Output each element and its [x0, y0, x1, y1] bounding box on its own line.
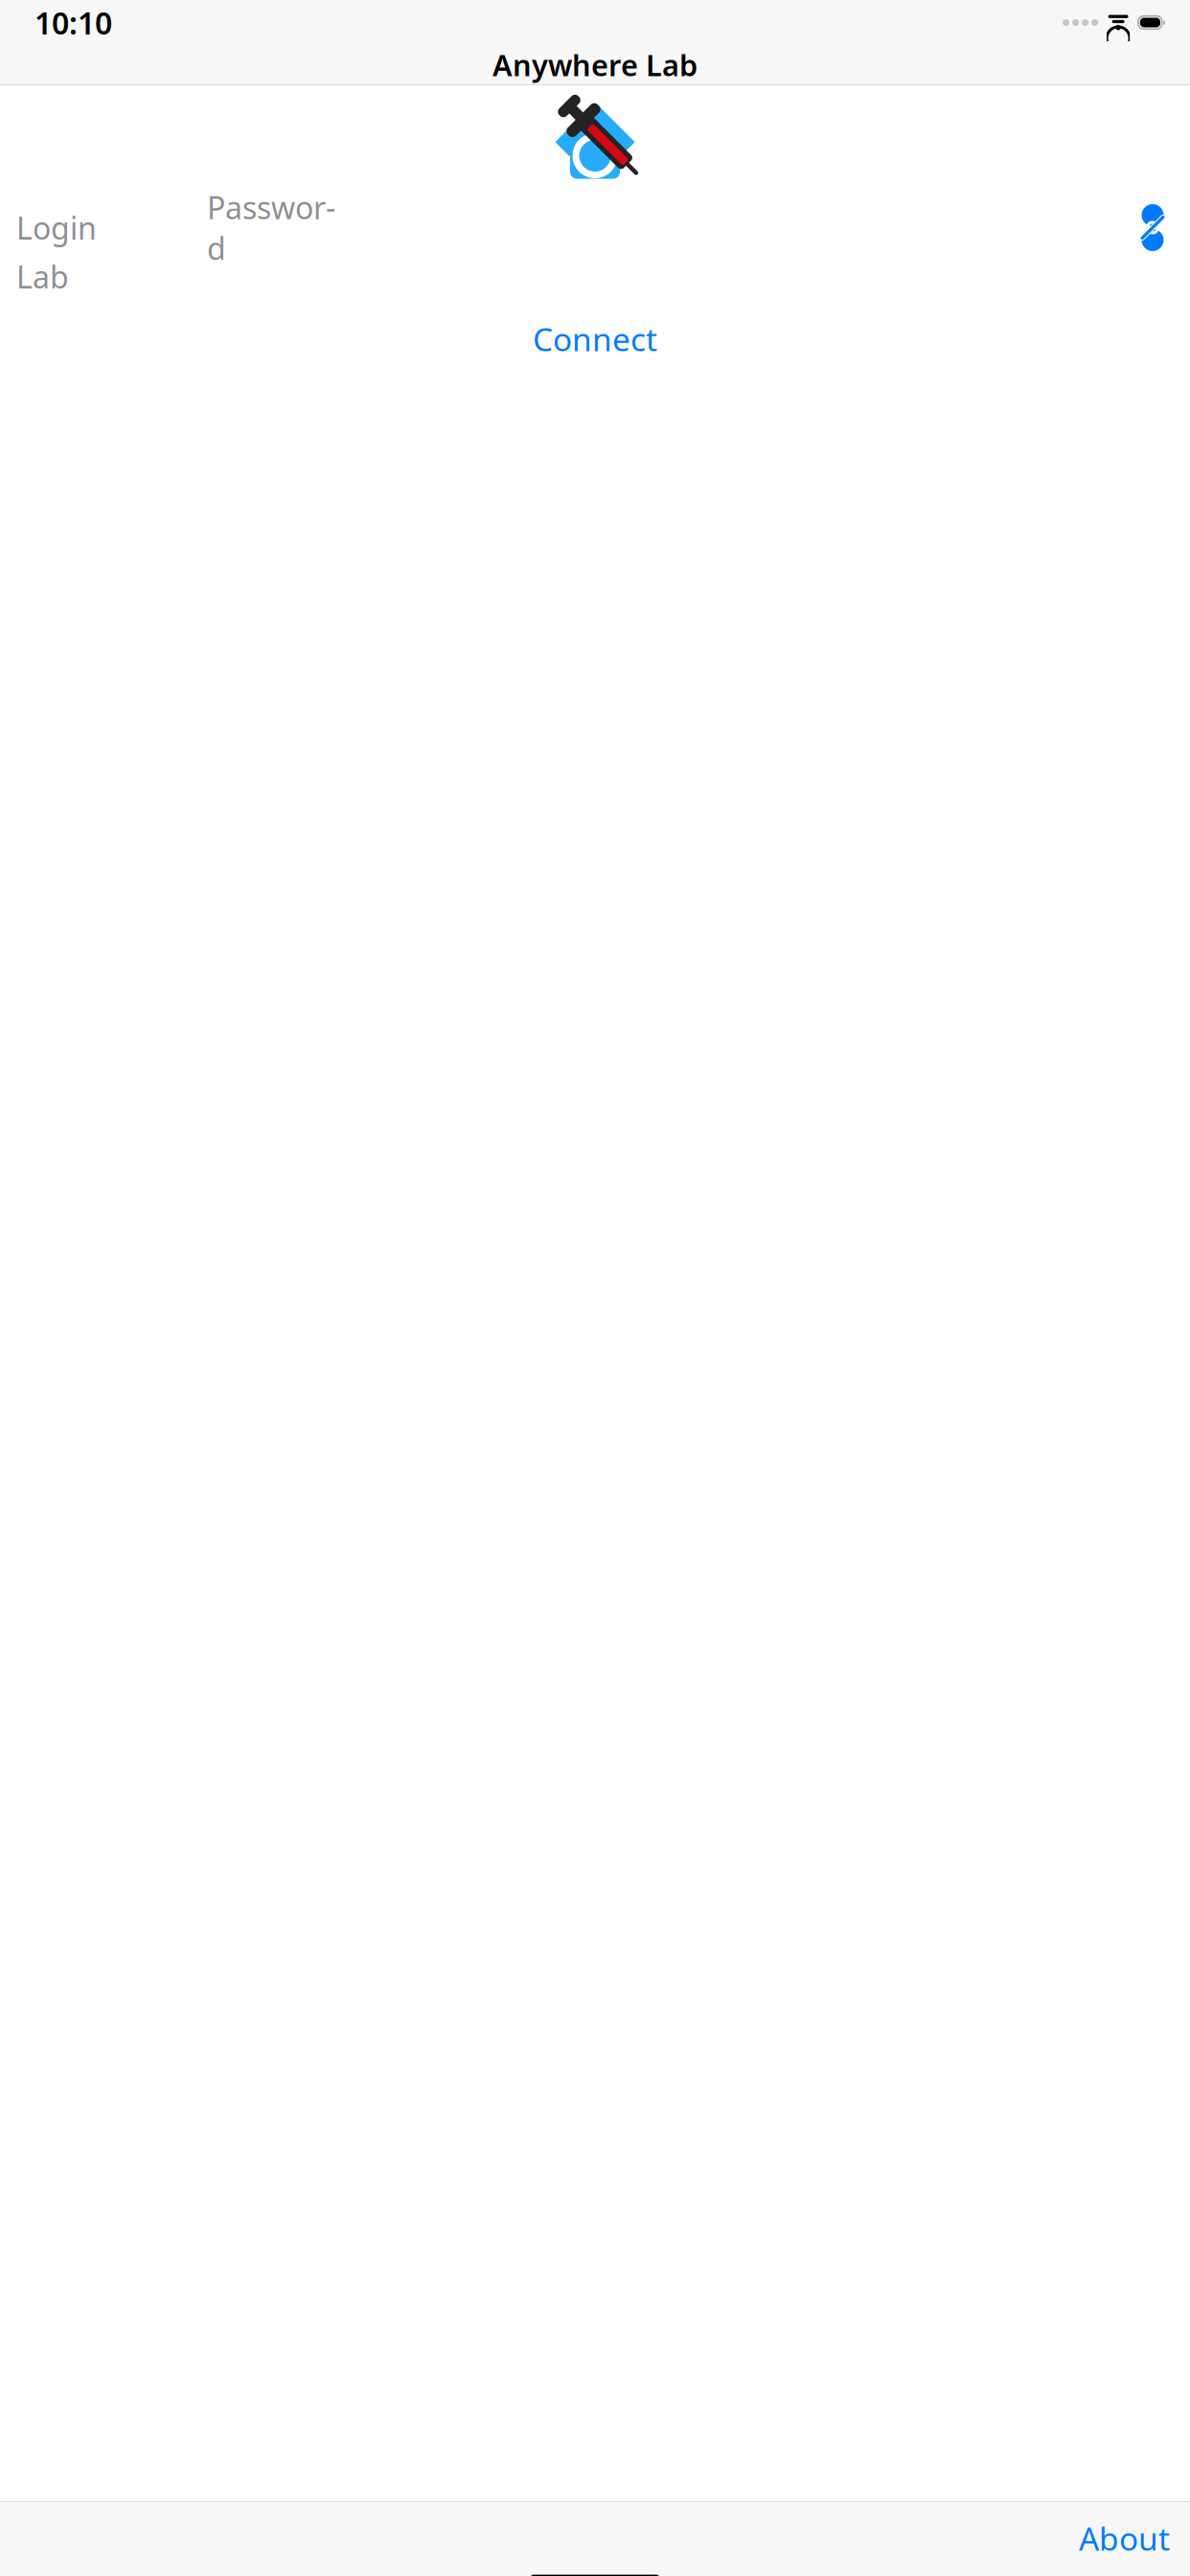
- button[interactable]: Show password: [1132, 207, 1174, 249]
- staticText: Anywhere Lab: [492, 45, 698, 84]
- staticText: 10:10: [34, 2, 112, 43]
- staticText: About: [1079, 2517, 1170, 2559]
- staticText: Connect: [533, 318, 657, 360]
- button[interactable]: Connect: [510, 309, 680, 369]
- staticText: Password: [207, 187, 335, 268]
- button[interactable]: Login: [16, 207, 207, 249]
- button[interactable]: About: [1069, 2509, 1179, 2567]
- button[interactable]: Lab: [16, 255, 207, 298]
- staticText: Lab: [16, 256, 69, 297]
- button[interactable]: Password: [207, 207, 352, 249]
- staticText: Login: [16, 207, 97, 248]
